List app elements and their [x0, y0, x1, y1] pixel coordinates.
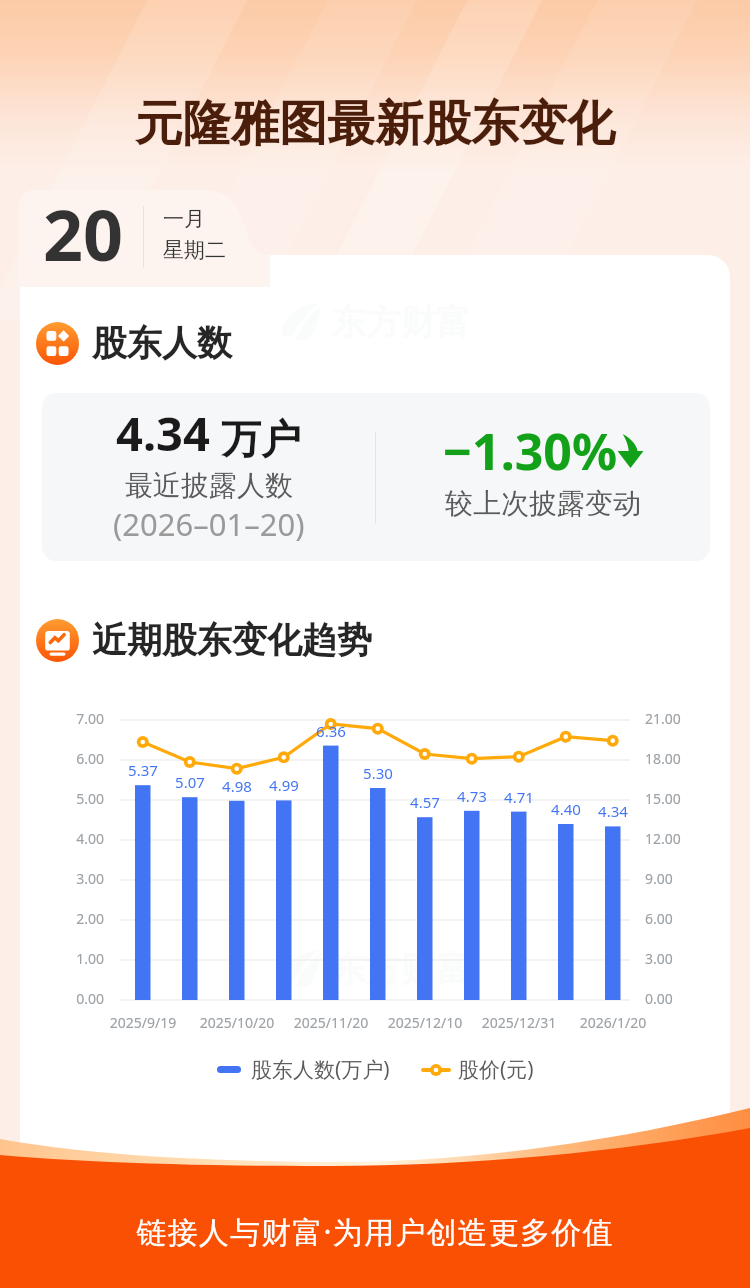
staticText: 近期股东变化趋势 [92, 618, 372, 662]
staticText: 4.99 [254, 775, 314, 795]
staticText: 3.00 [645, 949, 705, 968]
staticText: 4.34 [116, 401, 210, 465]
staticText: 万户 [221, 414, 301, 464]
staticText: 5.37 [113, 760, 173, 780]
staticText: 5.00 [44, 789, 104, 808]
staticText: 5.30 [348, 763, 408, 783]
staticText: 6.00 [44, 749, 104, 768]
staticText: 链接人与财富·为用户创造更多价值 [0, 1211, 750, 1252]
staticText: 2025/11/20 [281, 1013, 381, 1032]
staticText: −1.30% [443, 417, 617, 485]
staticText: 20 [43, 186, 124, 281]
staticText: 4.34 [583, 801, 643, 821]
staticText: 9.00 [645, 869, 705, 888]
other: 股东人数 [36, 322, 79, 365]
button[interactable]: 近期股东变化趋势 [36, 618, 372, 662]
staticText: 较上次披露变动 [445, 486, 641, 521]
staticText: 股东人数(万户) [251, 1055, 390, 1084]
staticText: 最近披露人数 [125, 468, 293, 503]
staticText: 1.00 [44, 949, 104, 968]
staticText: 15.00 [645, 789, 705, 808]
staticText: (2026–01–20) [113, 503, 305, 545]
staticText: 4.71 [489, 787, 549, 807]
staticText: 2025/9/19 [93, 1013, 193, 1032]
staticText: 4.73 [442, 786, 502, 806]
staticText: 2025/10/20 [187, 1013, 287, 1032]
staticText: 4.40 [536, 799, 596, 819]
staticText: 0.00 [44, 989, 104, 1008]
staticText: 股东人数 [92, 321, 232, 365]
staticText: 4.00 [44, 829, 104, 848]
staticText: 6.00 [645, 909, 705, 928]
staticText: 元隆雅图最新股东变化 [0, 94, 750, 154]
staticText: 5.07 [160, 772, 220, 792]
staticText: 21.00 [645, 709, 705, 728]
staticText: 18.00 [645, 749, 705, 768]
staticText: 星期二 [163, 237, 226, 263]
staticText: 2026/1/20 [563, 1013, 663, 1032]
staticText: 4.98 [207, 776, 267, 796]
staticText: 东方财富 [331, 947, 471, 991]
staticText: 2.00 [44, 909, 104, 928]
staticText: 2025/12/10 [375, 1013, 475, 1032]
staticText: 3.00 [44, 869, 104, 888]
other: 近期股东变化趋势 [36, 619, 79, 662]
button[interactable]: 股东人数 [36, 321, 232, 365]
staticText: 2025/12/31 [469, 1013, 569, 1032]
staticText: 6.36 [301, 721, 361, 741]
staticText: 7.00 [44, 709, 104, 728]
staticText: 股价(元) [458, 1055, 534, 1084]
staticText: 4.57 [395, 792, 455, 812]
staticText: 0.00 [645, 989, 705, 1008]
staticText: 12.00 [645, 829, 705, 848]
staticText: 一月 [163, 206, 205, 232]
button[interactable] [42, 393, 710, 561]
